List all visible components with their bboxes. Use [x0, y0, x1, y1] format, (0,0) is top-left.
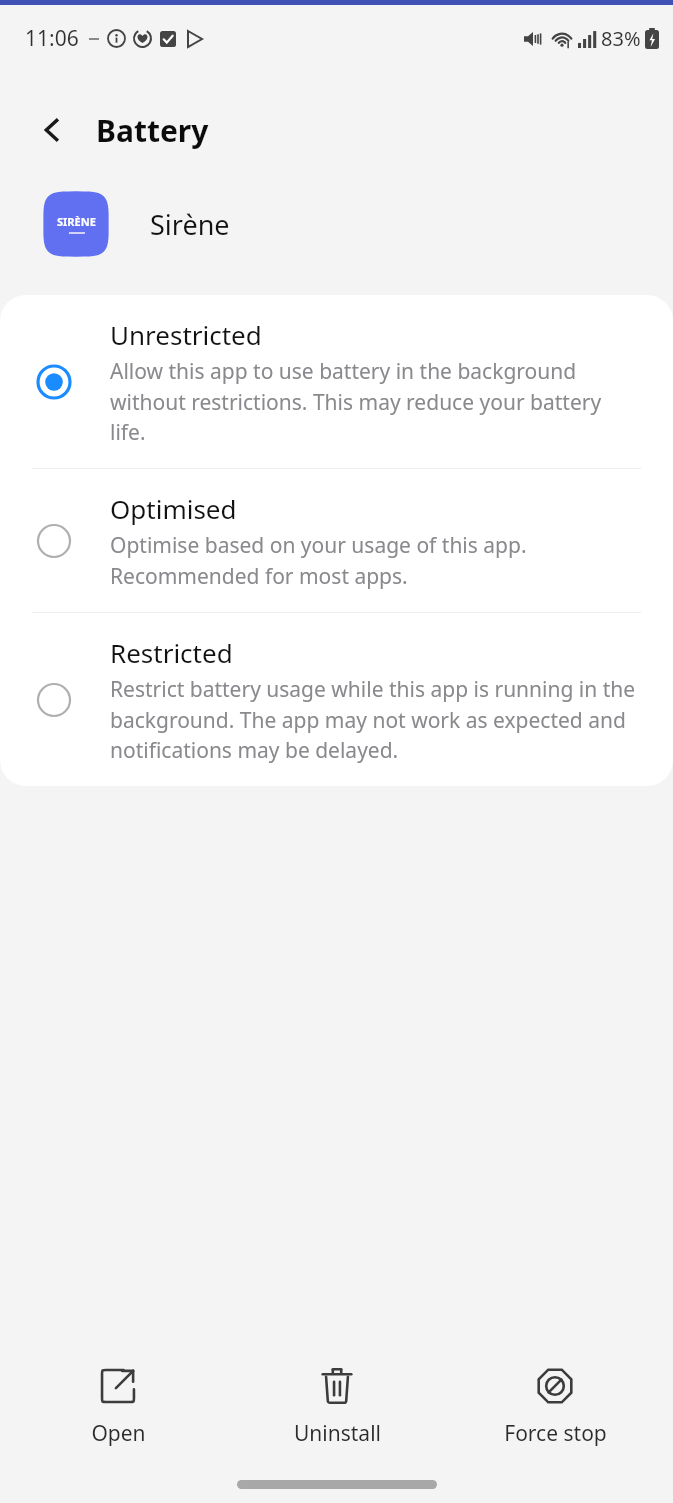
button[interactable]: Optimised: [0, 469, 673, 612]
staticText: Optimise based on your usage of this app…: [110, 531, 637, 590]
staticText: Restricted: [110, 635, 233, 670]
button[interactable]: Unrestricted: [0, 295, 673, 468]
button[interactable]: Force stop: [455, 1357, 655, 1456]
staticText: Force stop: [504, 1419, 607, 1448]
staticText: Unrestricted: [110, 317, 262, 352]
staticText: Sirène: [150, 206, 230, 243]
button[interactable]: Open: [18, 1357, 218, 1456]
staticText: Allow this app to use battery in the bac…: [110, 357, 637, 446]
staticText: SIRÈNE: [57, 214, 96, 229]
staticText: Uninstall: [294, 1419, 381, 1448]
staticText: Restrict battery usage while this app is…: [110, 675, 637, 764]
button[interactable]: Uninstall: [237, 1357, 437, 1456]
staticText: 11:06: [25, 24, 79, 53]
button[interactable]: Back: [28, 106, 76, 154]
button[interactable]: Restricted: [0, 613, 673, 786]
staticText: Battery: [96, 110, 209, 151]
staticText: Optimised: [110, 491, 237, 526]
staticText: 83%: [601, 25, 641, 52]
staticText: Open: [91, 1419, 146, 1448]
